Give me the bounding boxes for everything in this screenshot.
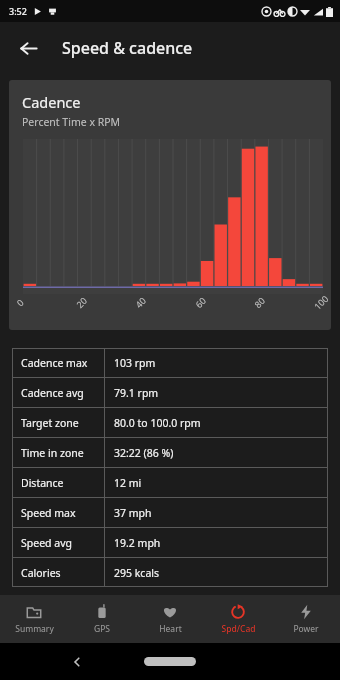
staticText: Calories [21,566,61,580]
button[interactable]: Heart [136,595,204,643]
staticText: 103 rpm [114,356,156,370]
button[interactable]: Summary [0,595,68,643]
button[interactable]: Back [64,649,90,675]
staticText: Cadence max [21,356,88,370]
staticText: 79.1 rpm [114,386,159,400]
staticText: Speed & cadence [62,37,193,59]
staticText: GPS [94,623,110,635]
staticText: 12 mi [114,476,142,490]
staticText: 20 [73,294,90,310]
button[interactable]: Power [272,595,340,643]
staticText: Percent Time x RPM [22,115,121,129]
button[interactable]: Home [144,657,196,666]
staticText: Summary [15,623,54,635]
staticText: Distance [21,476,64,490]
button[interactable]: Spd/Cad [204,595,272,643]
button[interactable]: Cadence [9,80,331,330]
staticText: Speed max [21,506,76,520]
staticText: Target zone [21,416,79,430]
staticText: Speed avg [21,536,72,550]
staticText: 295 kcals [114,566,160,580]
staticText: 0 [14,296,26,308]
staticText: 80 [251,294,268,310]
staticText: 40 [132,294,149,310]
button[interactable]: GPS [68,595,136,643]
staticText: Time in zone [21,446,84,460]
staticText: Power [293,623,319,635]
button[interactable]: Back [8,28,48,68]
staticText: 60 [192,294,209,310]
staticText: 100 [311,292,331,312]
staticText: 19.2 mph [114,536,161,550]
staticText: 3:52 [9,5,27,17]
staticText: Cadence [22,92,81,112]
staticText: 37 mph [114,506,152,520]
staticText: Heart [159,623,182,635]
staticText: Cadence avg [21,386,84,400]
staticText: 80.0 to 100.0 rpm [114,416,201,430]
staticText: Spd/Cad [221,623,256,635]
staticText: 32:22 (86 %) [114,446,174,460]
button[interactable]: Cadence max [12,348,328,587]
